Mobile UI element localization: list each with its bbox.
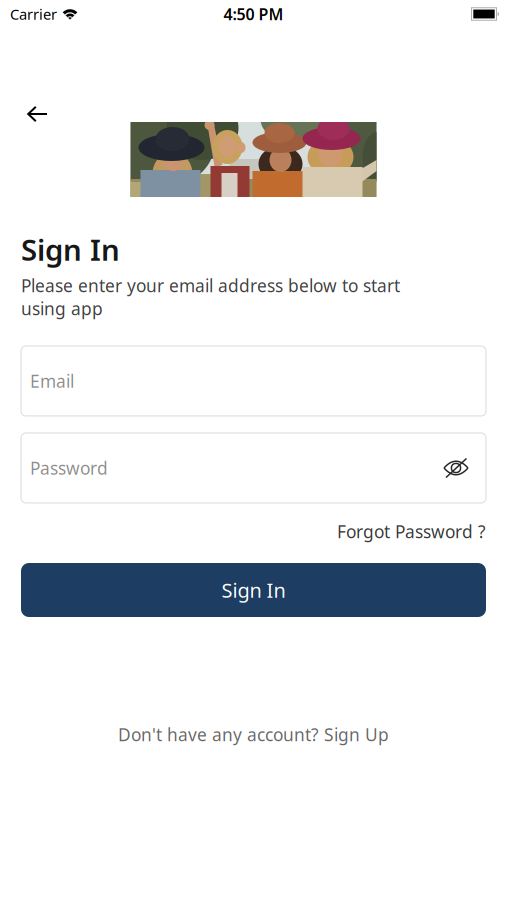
staticText: Carrier [10, 4, 57, 24]
staticText: Sign In [221, 577, 285, 603]
button[interactable]: Sign In [21, 563, 486, 617]
staticText: Email [30, 369, 74, 392]
staticText: Please enter your email address below to… [21, 274, 400, 320]
button[interactable]: Don't have any account? Sign Up [118, 723, 389, 746]
staticText: Sign In [21, 230, 120, 269]
button[interactable]: Back [27, 106, 48, 122]
button[interactable]: Password [21, 433, 486, 503]
staticText: 4:50 PM [223, 3, 283, 25]
button[interactable]: Show password [443, 458, 469, 478]
button[interactable]: Email [21, 346, 486, 416]
staticText: Password [30, 456, 108, 479]
staticText: Don't have any account? Sign Up [118, 723, 389, 746]
staticText: Forgot Password ? [337, 520, 486, 543]
button[interactable]: Forgot Password ? [337, 520, 486, 543]
